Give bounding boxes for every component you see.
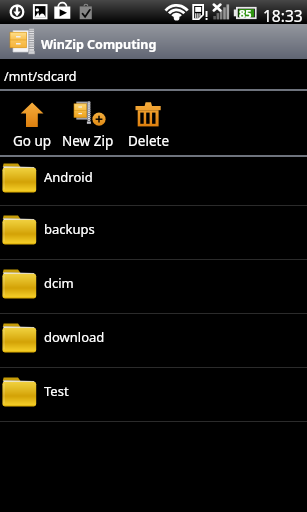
staticText: backups bbox=[44, 220, 95, 238]
staticText: 85 bbox=[239, 6, 252, 21]
staticText: Android bbox=[44, 168, 93, 186]
button[interactable]: backups bbox=[0, 206, 307, 259]
button[interactable]: Test bbox=[0, 368, 307, 421]
staticText: download bbox=[44, 328, 105, 346]
button[interactable]: Android bbox=[0, 157, 307, 205]
staticText: Delete bbox=[128, 132, 170, 150]
staticText: New Zip bbox=[62, 132, 114, 150]
button[interactable]: Go up bbox=[3, 91, 61, 155]
button[interactable]: Delete bbox=[120, 91, 178, 155]
button[interactable]: download bbox=[0, 314, 307, 367]
staticText: Test bbox=[44, 382, 69, 400]
staticText: 18:33 bbox=[263, 5, 303, 26]
staticText: WinZip Computing bbox=[41, 36, 157, 53]
staticText: Go up bbox=[13, 132, 52, 150]
staticText: /mnt/sdcard bbox=[4, 68, 77, 85]
staticText: dcim bbox=[44, 274, 74, 292]
button[interactable]: New Zip bbox=[59, 91, 117, 155]
button[interactable]: dcim bbox=[0, 260, 307, 313]
